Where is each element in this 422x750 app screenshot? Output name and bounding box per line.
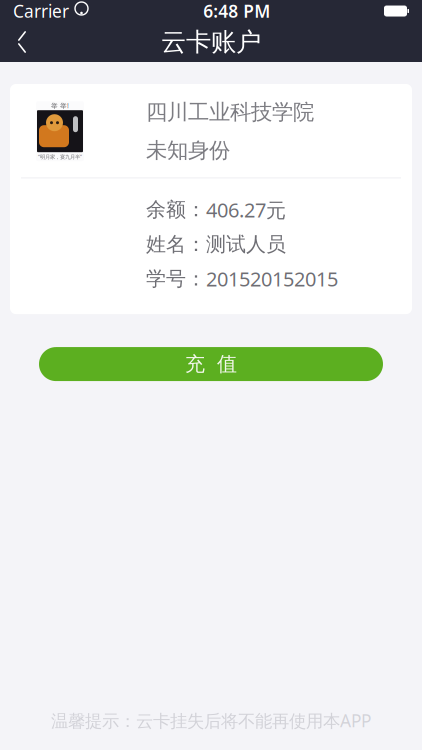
- staticText: 6:48 PM: [203, 0, 270, 22]
- staticText: 未知身份: [146, 137, 230, 163]
- button[interactable]: 充 值: [39, 347, 383, 381]
- staticText: 四川工业科技学院: [146, 99, 314, 125]
- staticText: Carrier: [13, 0, 69, 22]
- staticText: 201520152015: [206, 265, 338, 292]
- staticText: 充 值: [185, 352, 237, 376]
- staticText: 测试人员: [206, 232, 286, 257]
- staticText: 余额：: [146, 197, 206, 222]
- staticText: 姓名：: [146, 232, 206, 257]
- staticText: 云卡账户: [161, 26, 261, 57]
- staticText: [69, 0, 74, 22]
- button[interactable]: Back: [0, 22, 44, 62]
- staticText: 406.27元: [206, 196, 286, 223]
- staticText: 温馨提示：云卡挂失后将不能再使用本APP: [51, 709, 371, 732]
- staticText: “明月家，宴九月半”: [38, 153, 82, 160]
- staticText: 学号：: [146, 266, 206, 291]
- staticText: 举 举!: [51, 101, 69, 110]
